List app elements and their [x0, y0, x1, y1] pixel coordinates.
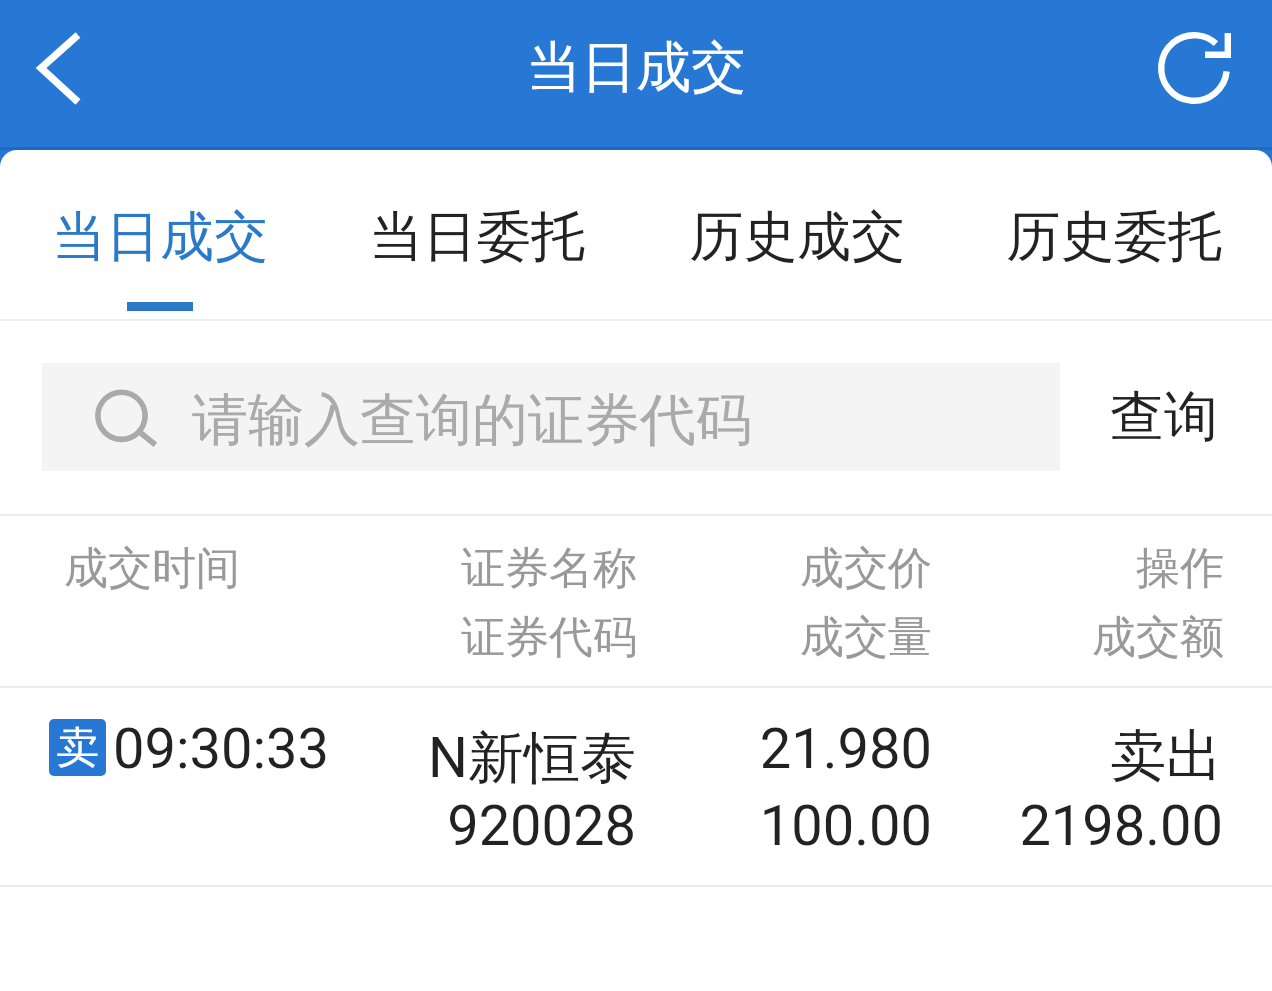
staticText: 请输入查询的证券代码 [192, 385, 752, 456]
staticText: 证券代码 [217, 610, 637, 665]
staticText: 成交额 [804, 610, 1224, 665]
staticText: 操作 [804, 541, 1224, 596]
staticText: 卖出 [802, 721, 1222, 792]
staticText: 当日成交 [0, 33, 1272, 102]
staticText: 21.980 [512, 716, 932, 782]
button[interactable]: 历史委托 [1004, 150, 1224, 321]
staticText: 卖 [56, 721, 99, 775]
button[interactable]: 查询 [1080, 363, 1248, 471]
staticText: 100.00 [512, 793, 932, 859]
staticText: N新恒泰 [216, 723, 636, 794]
staticText: 证券名称 [217, 541, 637, 596]
staticText: 2198.00 [803, 793, 1223, 859]
staticText: 成交价 [512, 541, 932, 596]
staticText: 成交量 [512, 610, 932, 665]
button[interactable]: 历史成交 [687, 150, 907, 321]
staticText: 当日成交 [50, 203, 270, 271]
button[interactable]: Refresh [1148, 22, 1240, 114]
button[interactable]: 卖 [0, 688, 1272, 885]
button[interactable]: Back [7, 18, 107, 118]
button[interactable]: 当日成交 [50, 150, 270, 321]
button[interactable]: 当日委托 [367, 150, 587, 321]
staticText: 查询 [1110, 383, 1218, 451]
staticText: 920028 [216, 793, 636, 859]
staticText: 历史成交 [687, 203, 907, 271]
button[interactable]: 请输入查询的证券代码 [42, 363, 1060, 471]
staticText: 历史委托 [1004, 203, 1224, 271]
staticText: 当日委托 [367, 203, 587, 271]
staticText: 成交时间 [64, 541, 240, 596]
staticText: 09:30:33 [113, 716, 329, 782]
